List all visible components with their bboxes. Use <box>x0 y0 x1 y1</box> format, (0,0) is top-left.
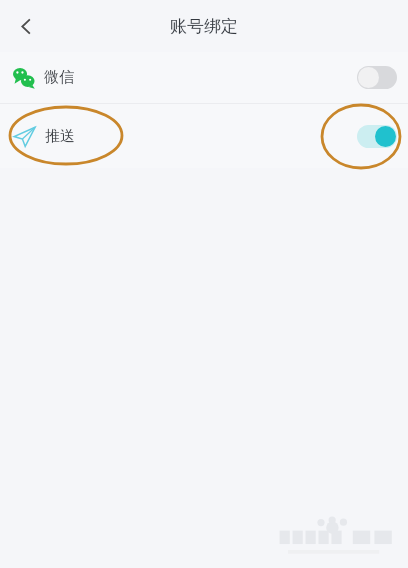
staticText: 微信 <box>44 68 74 87</box>
button[interactable]: 微信 <box>0 52 408 103</box>
button[interactable]: 推送 <box>0 104 408 168</box>
button[interactable]: Back <box>4 4 48 48</box>
staticText: 推送 <box>45 127 75 146</box>
staticText: 账号绑定 <box>170 16 238 37</box>
button[interactable]: Toggle on <box>357 125 397 148</box>
button[interactable]: Toggle off <box>357 66 397 89</box>
